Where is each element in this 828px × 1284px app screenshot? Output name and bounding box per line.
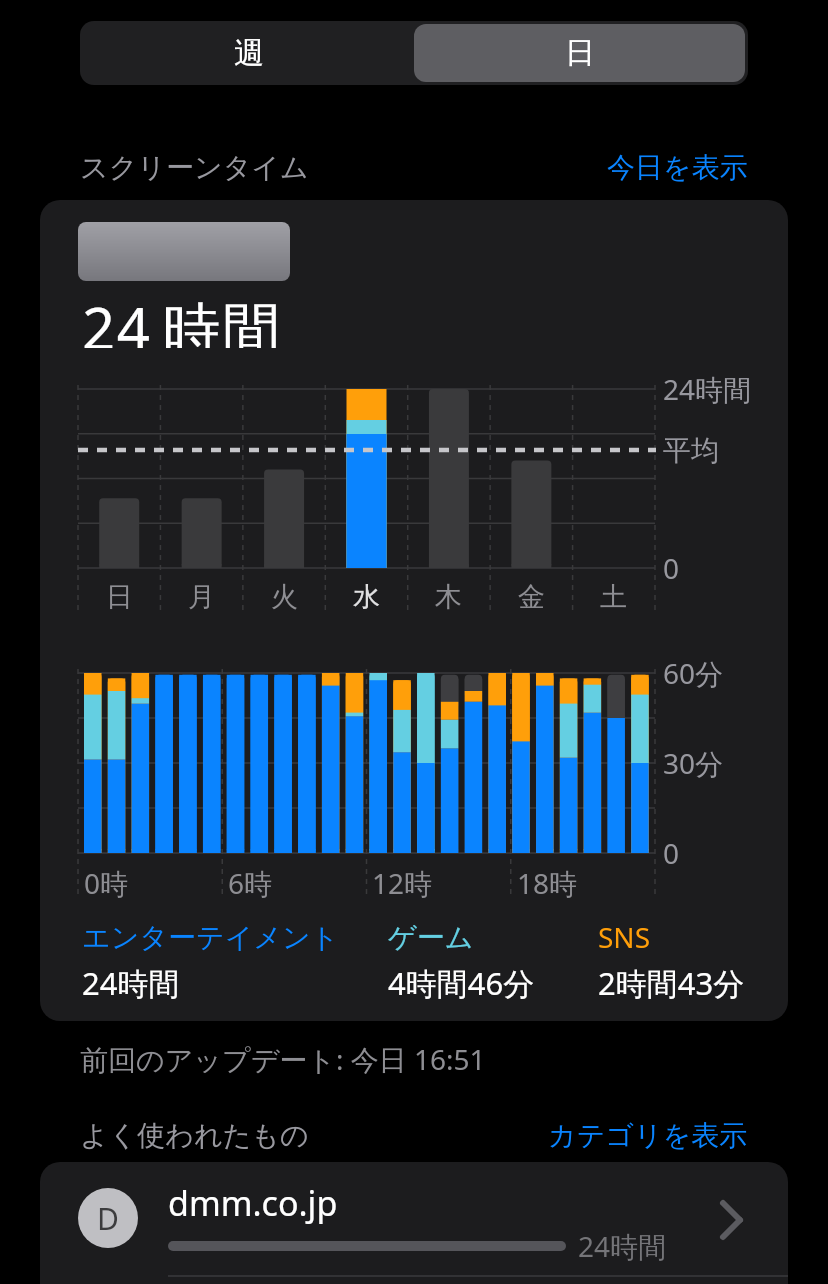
staticText: 平均	[663, 433, 719, 468]
staticText: 水	[353, 580, 380, 614]
button[interactable]: 週	[83, 24, 414, 82]
staticText: 0時	[84, 864, 129, 902]
staticText: よく使われたもの	[80, 1118, 309, 1153]
staticText: 週	[234, 34, 264, 72]
staticText: 6時	[228, 864, 273, 902]
staticText: 0	[663, 549, 680, 587]
staticText: 24時間	[663, 370, 752, 408]
staticText: 24 時間	[82, 288, 282, 348]
staticText: エンターテイメント	[82, 920, 340, 955]
staticText: 12時	[372, 864, 433, 902]
staticText: 金	[518, 580, 545, 614]
staticText: 24時間	[82, 962, 180, 1004]
staticText: 日	[106, 580, 133, 614]
staticText: 24時間	[578, 1227, 667, 1265]
staticText: 今日を表示	[607, 150, 748, 185]
button[interactable]: 今日を表示	[348, 137, 748, 197]
staticText: SNS	[598, 918, 651, 956]
staticText: 60分	[663, 654, 724, 692]
staticText: スクリーンタイム	[80, 150, 309, 185]
staticText: D	[97, 1198, 119, 1239]
staticText: 木	[435, 580, 462, 614]
staticText: 日	[565, 34, 595, 72]
staticText: 月	[188, 580, 215, 614]
staticText: 2時間43分	[598, 962, 745, 1004]
button[interactable]	[40, 1162, 788, 1284]
staticText: 0	[663, 834, 680, 872]
staticText: 18時	[517, 864, 578, 902]
staticText: カテゴリを表示	[548, 1118, 748, 1153]
staticText: 4時間46分	[388, 962, 535, 1004]
button[interactable]: 日	[414, 24, 745, 82]
staticText: dmm.co.jp	[168, 1180, 338, 1226]
staticText: 30分	[663, 744, 724, 782]
button[interactable]: カテゴリを表示	[348, 1105, 748, 1165]
staticText: ゲーム	[388, 920, 474, 955]
staticText: 土	[600, 580, 627, 614]
staticText: 前回のアップデート: 今日 16:51	[80, 1040, 486, 1078]
staticText: 火	[271, 580, 298, 614]
